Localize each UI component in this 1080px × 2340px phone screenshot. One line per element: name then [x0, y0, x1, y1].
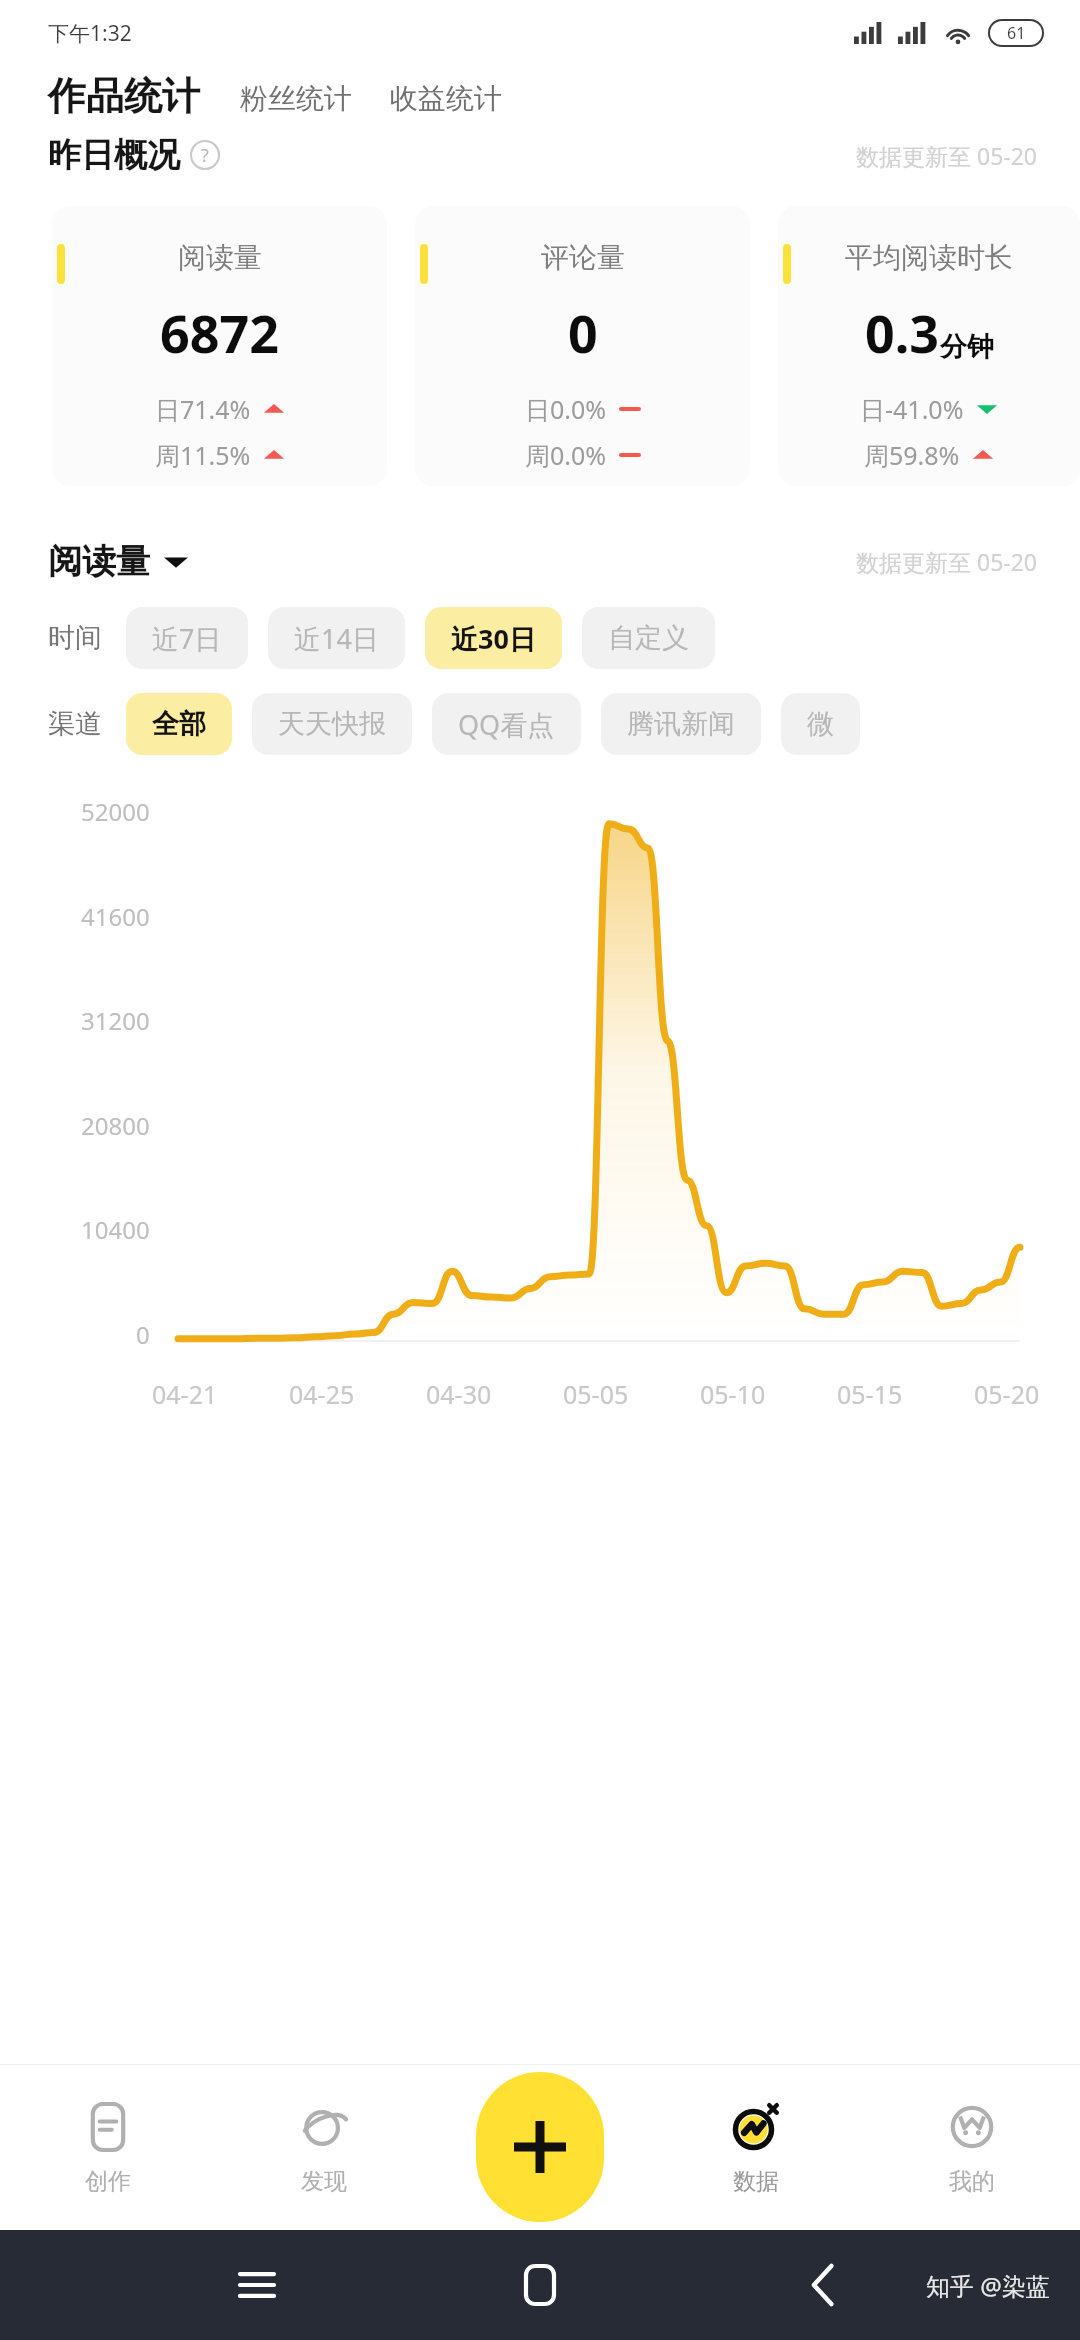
button[interactable]: 发现	[216, 2064, 432, 2230]
staticText: 粉丝统计	[240, 81, 352, 116]
staticText: 近7日	[152, 620, 222, 657]
button[interactable]: 评论量	[415, 206, 750, 486]
staticText: 近14日	[294, 620, 379, 657]
staticText: 04-25	[289, 1377, 355, 1411]
staticText: 收益统计	[390, 81, 502, 116]
button[interactable]: 主页	[513, 2258, 567, 2312]
button[interactable]: 粉丝统计	[240, 81, 352, 120]
staticText: 评论量	[541, 240, 625, 275]
button[interactable]: 创作	[0, 2064, 216, 2230]
button[interactable]: 近7日	[126, 607, 248, 669]
staticText: 05-05	[563, 1377, 629, 1411]
staticText: 数据	[733, 2167, 779, 2196]
staticText: QQ看点	[458, 706, 555, 743]
button[interactable]: 近30日	[425, 607, 562, 669]
staticText: 61	[1007, 22, 1026, 44]
staticText: 0.3	[865, 297, 940, 368]
staticText: 自定义	[608, 621, 689, 655]
staticText: 时间	[48, 621, 102, 655]
staticText: 31200	[81, 1004, 150, 1037]
button[interactable]: 阅读量	[52, 206, 387, 486]
staticText: 05-10	[700, 1377, 766, 1411]
staticText: 日71.4%	[155, 392, 251, 426]
staticText: 平均阅读时长	[845, 240, 1013, 275]
staticText: 05-15	[837, 1377, 903, 1411]
staticText: 阅读量	[178, 240, 262, 275]
staticText: 近30日	[451, 620, 536, 657]
button[interactable]: 菜单	[230, 2258, 284, 2312]
button[interactable]: 发布	[476, 2072, 604, 2222]
staticText: 10400	[81, 1213, 150, 1246]
button[interactable]: 天天快报	[252, 693, 412, 755]
staticText: ?	[201, 143, 209, 168]
button[interactable]: 近14日	[268, 607, 405, 669]
button[interactable]: 收益统计	[390, 81, 502, 120]
button[interactable]: 微	[781, 693, 860, 755]
button[interactable]: QQ看点	[432, 693, 581, 755]
staticText: 周59.8%	[864, 438, 960, 472]
button[interactable]: 返回	[796, 2258, 850, 2312]
staticText: 天天快报	[278, 707, 386, 741]
staticText: 微	[807, 707, 834, 741]
staticText: 知乎 @染蓝	[926, 2269, 1050, 2302]
staticText: 0	[568, 297, 598, 368]
staticText: 0	[136, 1318, 150, 1351]
staticText: 我的	[949, 2167, 995, 2196]
staticText: 发现	[301, 2167, 347, 2196]
staticText: 全部	[152, 707, 206, 741]
staticText: 创作	[85, 2167, 131, 2196]
staticText: 20800	[81, 1109, 150, 1142]
button[interactable]: 全部	[126, 693, 232, 755]
staticText: 分钟	[940, 330, 994, 364]
staticText: 04-30	[426, 1377, 492, 1411]
button[interactable]: 阅读量	[48, 540, 188, 583]
staticText: 数据更新至 05-20	[856, 546, 1038, 577]
staticText: 日-41.0%	[860, 392, 964, 426]
button[interactable]: 我的	[864, 2064, 1080, 2230]
staticText: 渠道	[48, 707, 102, 741]
staticText: 6872	[160, 297, 279, 368]
staticText: 周11.5%	[155, 438, 251, 472]
staticText: 41600	[81, 900, 150, 933]
staticText: 数据更新至 05-20	[856, 140, 1038, 171]
staticText: 05-20	[974, 1377, 1040, 1411]
button[interactable]: 腾讯新闻	[601, 693, 761, 755]
staticText: 周0.0%	[525, 438, 607, 472]
staticText: 腾讯新闻	[627, 707, 735, 741]
staticText: 52000	[81, 795, 150, 828]
staticText: 下午1:32	[48, 19, 132, 48]
staticText: 阅读量	[48, 540, 150, 583]
button[interactable]: 数据	[648, 2064, 864, 2230]
button[interactable]: 作品统计	[48, 72, 200, 120]
button[interactable]: 平均阅读时长	[778, 206, 1080, 486]
button[interactable]: 帮助	[190, 140, 220, 170]
staticText: 04-21	[152, 1377, 218, 1411]
button[interactable]: 自定义	[582, 607, 715, 669]
staticText: 昨日概况	[48, 134, 180, 176]
staticText: 日0.0%	[525, 392, 607, 426]
staticText: 作品统计	[48, 72, 200, 120]
